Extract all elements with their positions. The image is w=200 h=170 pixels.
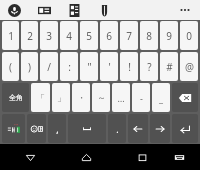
button[interactable]: .	[108, 114, 126, 143]
staticText: _	[159, 92, 163, 104]
button[interactable]: Home	[75, 146, 97, 168]
button[interactable]: ・	[72, 83, 90, 112]
staticText: #	[166, 60, 173, 74]
staticText: 」	[57, 92, 66, 103]
button[interactable]: Enter	[172, 114, 198, 143]
staticText: )	[28, 60, 31, 74]
button[interactable]: Emoji and symbols	[27, 114, 46, 143]
button[interactable]: 7	[120, 21, 138, 50]
staticText: 4	[66, 29, 72, 43]
staticText: 2	[27, 29, 33, 43]
staticText: 7	[126, 29, 132, 43]
staticText: ～	[97, 92, 106, 103]
staticText: 9	[166, 29, 172, 43]
button[interactable]: Voice input	[6, 2, 22, 18]
staticText: 8	[146, 29, 152, 43]
staticText: '	[108, 60, 111, 74]
staticText: .	[116, 123, 119, 135]
button[interactable]: 全角	[2, 83, 29, 112]
staticText: @	[185, 60, 194, 74]
button[interactable]: 1	[2, 21, 19, 50]
button[interactable]: '	[100, 52, 118, 81]
button[interactable]: 3	[40, 21, 58, 50]
button[interactable]: Back	[19, 146, 41, 168]
button[interactable]: 4	[60, 21, 78, 50]
button[interactable]: Layout	[66, 2, 82, 18]
staticText: 5	[86, 29, 92, 43]
button[interactable]: ,	[48, 114, 66, 143]
button[interactable]: )	[21, 52, 38, 81]
staticText: "	[87, 60, 92, 74]
button[interactable]: Cursor left	[128, 114, 148, 143]
button[interactable]: Change input mode	[2, 114, 25, 143]
button[interactable]: ?	[140, 52, 158, 81]
button[interactable]: 「	[31, 83, 50, 112]
button[interactable]: @	[180, 52, 198, 81]
button[interactable]: Recent apps	[131, 146, 153, 168]
staticText: 「	[36, 92, 45, 103]
button[interactable]: One-hand keyboard	[36, 2, 52, 18]
staticText: …	[117, 92, 125, 104]
button[interactable]: 0	[180, 21, 198, 50]
staticText: -	[140, 92, 143, 104]
button[interactable]: 6	[100, 21, 118, 50]
staticText: 6	[106, 29, 112, 43]
button[interactable]: _	[152, 83, 170, 112]
button[interactable]: :	[60, 52, 78, 81]
button[interactable]: 8	[140, 21, 158, 50]
staticText: 全角	[9, 93, 23, 102]
staticText: /	[47, 60, 51, 74]
button[interactable]: Clipboard	[96, 2, 112, 18]
button[interactable]: …	[112, 83, 130, 112]
staticText: :	[68, 60, 71, 74]
button[interactable]: 」	[52, 83, 70, 112]
button[interactable]: Space	[68, 114, 106, 143]
button[interactable]: Hide keyboard	[168, 146, 190, 168]
staticText: !	[128, 60, 131, 74]
button[interactable]: ～	[92, 83, 110, 112]
button[interactable]: (	[2, 52, 19, 81]
staticText: (	[9, 60, 12, 74]
button[interactable]: "	[80, 52, 98, 81]
staticText: 1	[8, 29, 14, 43]
staticText: 0	[186, 29, 192, 43]
button[interactable]: Backspace	[172, 83, 198, 112]
staticText: ?	[147, 60, 152, 74]
button[interactable]: 9	[160, 21, 178, 50]
button[interactable]: More options	[176, 1, 194, 19]
button[interactable]: /	[40, 52, 58, 81]
button[interactable]: !	[120, 52, 138, 81]
button[interactable]: Cursor right	[150, 114, 170, 143]
button[interactable]: -	[132, 83, 150, 112]
button[interactable]: 5	[80, 21, 98, 50]
staticText: ,	[56, 123, 59, 135]
staticText: 3	[46, 29, 52, 43]
button[interactable]: 2	[21, 21, 38, 50]
button[interactable]: #	[160, 52, 178, 81]
staticText: ・	[77, 92, 86, 103]
